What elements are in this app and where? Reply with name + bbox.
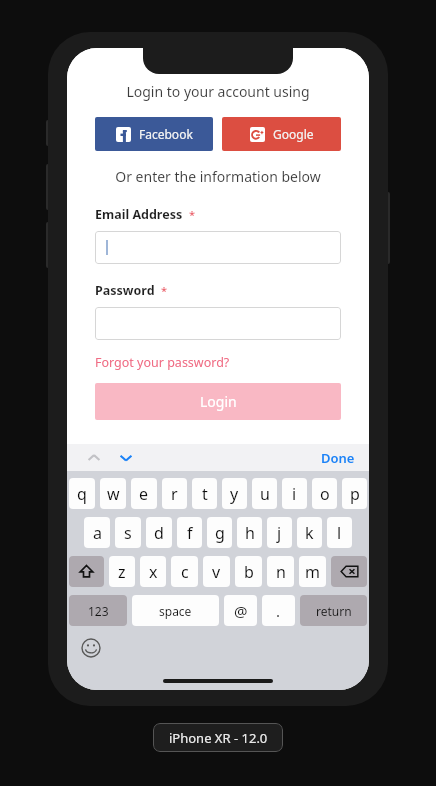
staticText: n bbox=[276, 561, 286, 583]
button[interactable]: k bbox=[297, 517, 322, 548]
button[interactable]: Facebook bbox=[95, 117, 213, 151]
staticText: Google bbox=[273, 126, 314, 142]
button[interactable]: Shift bbox=[69, 556, 104, 587]
button[interactable]: h bbox=[237, 517, 262, 548]
button[interactable]: r bbox=[162, 478, 187, 509]
staticText: h bbox=[245, 522, 255, 544]
button[interactable]: y bbox=[222, 478, 247, 509]
button[interactable]: Forgot your password? bbox=[95, 354, 230, 371]
button[interactable]: z bbox=[109, 556, 135, 587]
button[interactable]: w bbox=[100, 478, 126, 509]
button[interactable]: n bbox=[267, 556, 294, 587]
button[interactable]: c bbox=[171, 556, 198, 587]
button[interactable]: l bbox=[327, 517, 352, 548]
staticText: return bbox=[316, 603, 352, 619]
button[interactable]: e bbox=[131, 478, 157, 509]
staticText: p bbox=[350, 483, 360, 505]
staticText: f bbox=[187, 522, 193, 544]
staticText: Done bbox=[321, 449, 355, 467]
button[interactable]: Login bbox=[95, 383, 341, 420]
staticText: v bbox=[212, 561, 221, 583]
staticText: * bbox=[189, 207, 196, 222]
button[interactable]: v bbox=[203, 556, 230, 587]
staticText: Email Address bbox=[95, 206, 183, 223]
staticText: s bbox=[124, 522, 132, 544]
button[interactable]: b bbox=[235, 556, 262, 587]
button[interactable]: Previous field bbox=[81, 445, 107, 471]
button[interactable]: t bbox=[192, 478, 217, 509]
staticText: 123 bbox=[88, 603, 109, 619]
staticText: i bbox=[292, 483, 297, 505]
button[interactable]: Emoji keyboard bbox=[79, 636, 103, 660]
staticText: a bbox=[93, 522, 102, 544]
button[interactable]: s bbox=[115, 517, 141, 548]
button[interactable]: Next field bbox=[113, 445, 139, 471]
button[interactable]: m bbox=[299, 556, 326, 587]
button[interactable]: Google bbox=[222, 117, 341, 151]
button[interactable]: @ bbox=[224, 595, 257, 626]
button[interactable]: Done bbox=[321, 449, 355, 467]
button[interactable]: d bbox=[146, 517, 172, 548]
staticText: Forgot your password? bbox=[95, 354, 230, 371]
staticText: Login to your account using bbox=[95, 82, 341, 101]
button[interactable] bbox=[95, 231, 341, 264]
staticText: space bbox=[159, 603, 192, 619]
staticText: k bbox=[305, 522, 314, 544]
staticText: y bbox=[230, 483, 239, 505]
button[interactable]: x bbox=[140, 556, 166, 587]
staticText: o bbox=[320, 483, 330, 505]
staticText: t bbox=[202, 483, 208, 505]
button[interactable]: g bbox=[207, 517, 232, 548]
button[interactable] bbox=[95, 307, 341, 340]
staticText: iPhone XR - 12.0 bbox=[169, 729, 268, 747]
staticText: q bbox=[77, 483, 87, 505]
staticText: Or enter the information below bbox=[95, 167, 341, 186]
button[interactable]: u bbox=[252, 478, 277, 509]
staticText: r bbox=[171, 483, 178, 505]
staticText: j bbox=[277, 522, 282, 544]
staticText: Facebook bbox=[139, 126, 193, 142]
button[interactable]: p bbox=[342, 478, 367, 509]
staticText: @ bbox=[234, 601, 248, 621]
staticText: l bbox=[337, 522, 342, 544]
staticText: b bbox=[244, 561, 254, 583]
staticText: Password bbox=[95, 282, 155, 299]
button[interactable]: i bbox=[282, 478, 307, 509]
button[interactable]: o bbox=[312, 478, 337, 509]
button[interactable]: q bbox=[69, 478, 95, 509]
button[interactable]: j bbox=[267, 517, 292, 548]
button[interactable]: space bbox=[132, 595, 219, 626]
staticText: * bbox=[161, 283, 168, 298]
staticText: c bbox=[181, 561, 189, 583]
staticText: Login bbox=[200, 392, 237, 411]
staticText: e bbox=[139, 483, 149, 505]
staticText: w bbox=[107, 483, 120, 505]
button[interactable]: 123 bbox=[69, 595, 127, 626]
button[interactable]: Backspace bbox=[331, 556, 367, 587]
button[interactable]: f bbox=[177, 517, 202, 548]
staticText: u bbox=[260, 483, 270, 505]
staticText: m bbox=[305, 561, 320, 583]
staticText: . bbox=[276, 601, 281, 621]
button[interactable]: . bbox=[262, 595, 295, 626]
staticText: d bbox=[154, 522, 164, 544]
staticText: z bbox=[118, 561, 126, 583]
staticText: g bbox=[215, 522, 225, 544]
button[interactable]: a bbox=[84, 517, 110, 548]
staticText: x bbox=[149, 561, 158, 583]
button[interactable]: return bbox=[300, 595, 367, 626]
